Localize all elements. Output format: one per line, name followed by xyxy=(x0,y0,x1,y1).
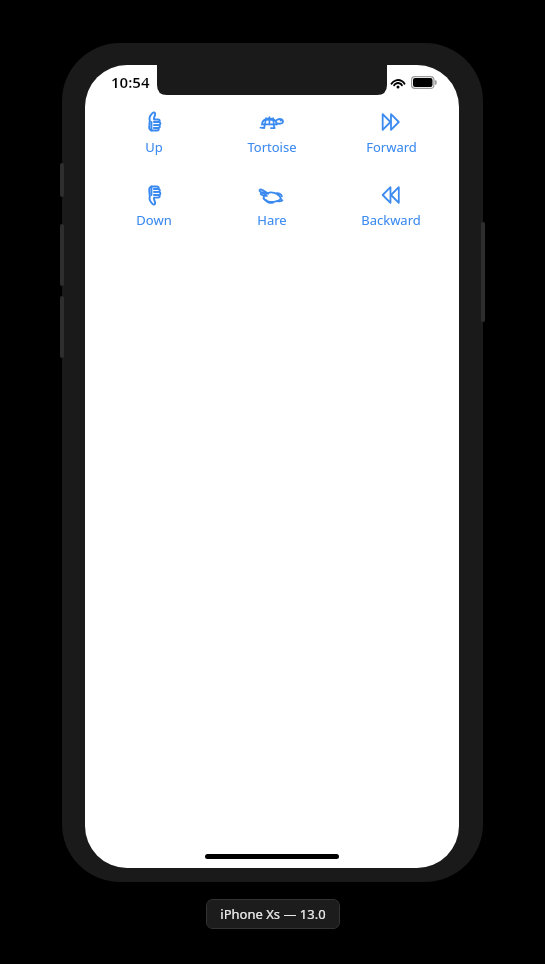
button[interactable]: Down xyxy=(104,180,204,231)
staticText: Tortoise xyxy=(247,138,297,156)
staticText: Up xyxy=(145,138,163,156)
button[interactable]: Backward xyxy=(341,180,441,231)
staticText: Down xyxy=(136,211,172,229)
staticText: Forward xyxy=(366,138,417,156)
button[interactable]: Forward xyxy=(341,107,441,158)
staticText: iPhone Xs — 13.0 xyxy=(220,905,326,923)
staticText: 10:54 xyxy=(111,72,150,92)
staticText: Backward xyxy=(361,211,421,229)
button[interactable]: Tortoise xyxy=(222,107,322,158)
button[interactable]: Hare xyxy=(222,180,322,231)
button[interactable]: Up xyxy=(104,107,204,158)
staticText: Hare xyxy=(257,211,287,229)
